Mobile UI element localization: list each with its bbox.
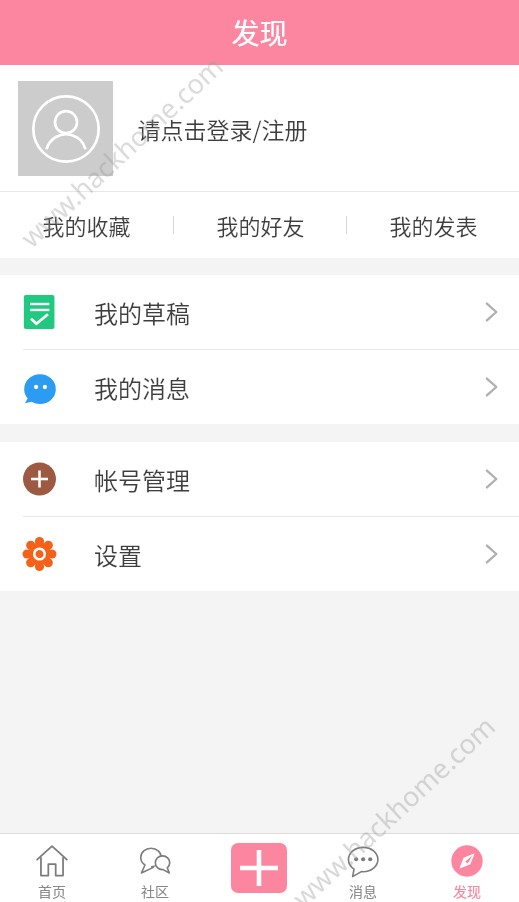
button[interactable]: 我的发表	[347, 192, 519, 258]
staticText: 我的草稿	[94, 295, 190, 330]
staticText: 我的好友	[216, 209, 305, 241]
staticText: 我的收藏	[42, 209, 131, 241]
button[interactable]: 社区	[103, 834, 207, 902]
staticText: 请点击登录/注册	[137, 112, 308, 145]
staticText: www.hackhome.com	[12, 47, 231, 255]
button[interactable]: 发现	[415, 834, 519, 902]
button[interactable]: 首页	[0, 834, 103, 902]
staticText: 我的消息	[94, 370, 190, 405]
button[interactable]: Add new post	[207, 834, 311, 902]
staticText: 设置	[94, 537, 142, 572]
staticText: 发现	[453, 881, 481, 901]
button[interactable]: 帐号管理	[0, 442, 519, 516]
staticText: 首页	[38, 881, 66, 901]
button[interactable]: 我的草稿	[0, 275, 519, 349]
staticText: 社区	[141, 881, 169, 901]
button[interactable]: 请点击登录/注册	[0, 65, 519, 191]
button[interactable]: 我的收藏	[0, 192, 173, 258]
staticText: 帐号管理	[94, 462, 190, 497]
button[interactable]: 设置	[0, 517, 519, 591]
staticText: 我的发表	[389, 209, 478, 241]
staticText: www.hackhome.com	[284, 707, 503, 902]
staticText: 消息	[349, 881, 377, 901]
button[interactable]: 我的好友	[174, 192, 346, 258]
staticText: 发现	[231, 12, 288, 53]
button[interactable]: 消息	[311, 834, 415, 902]
button[interactable]: 我的消息	[0, 350, 519, 424]
